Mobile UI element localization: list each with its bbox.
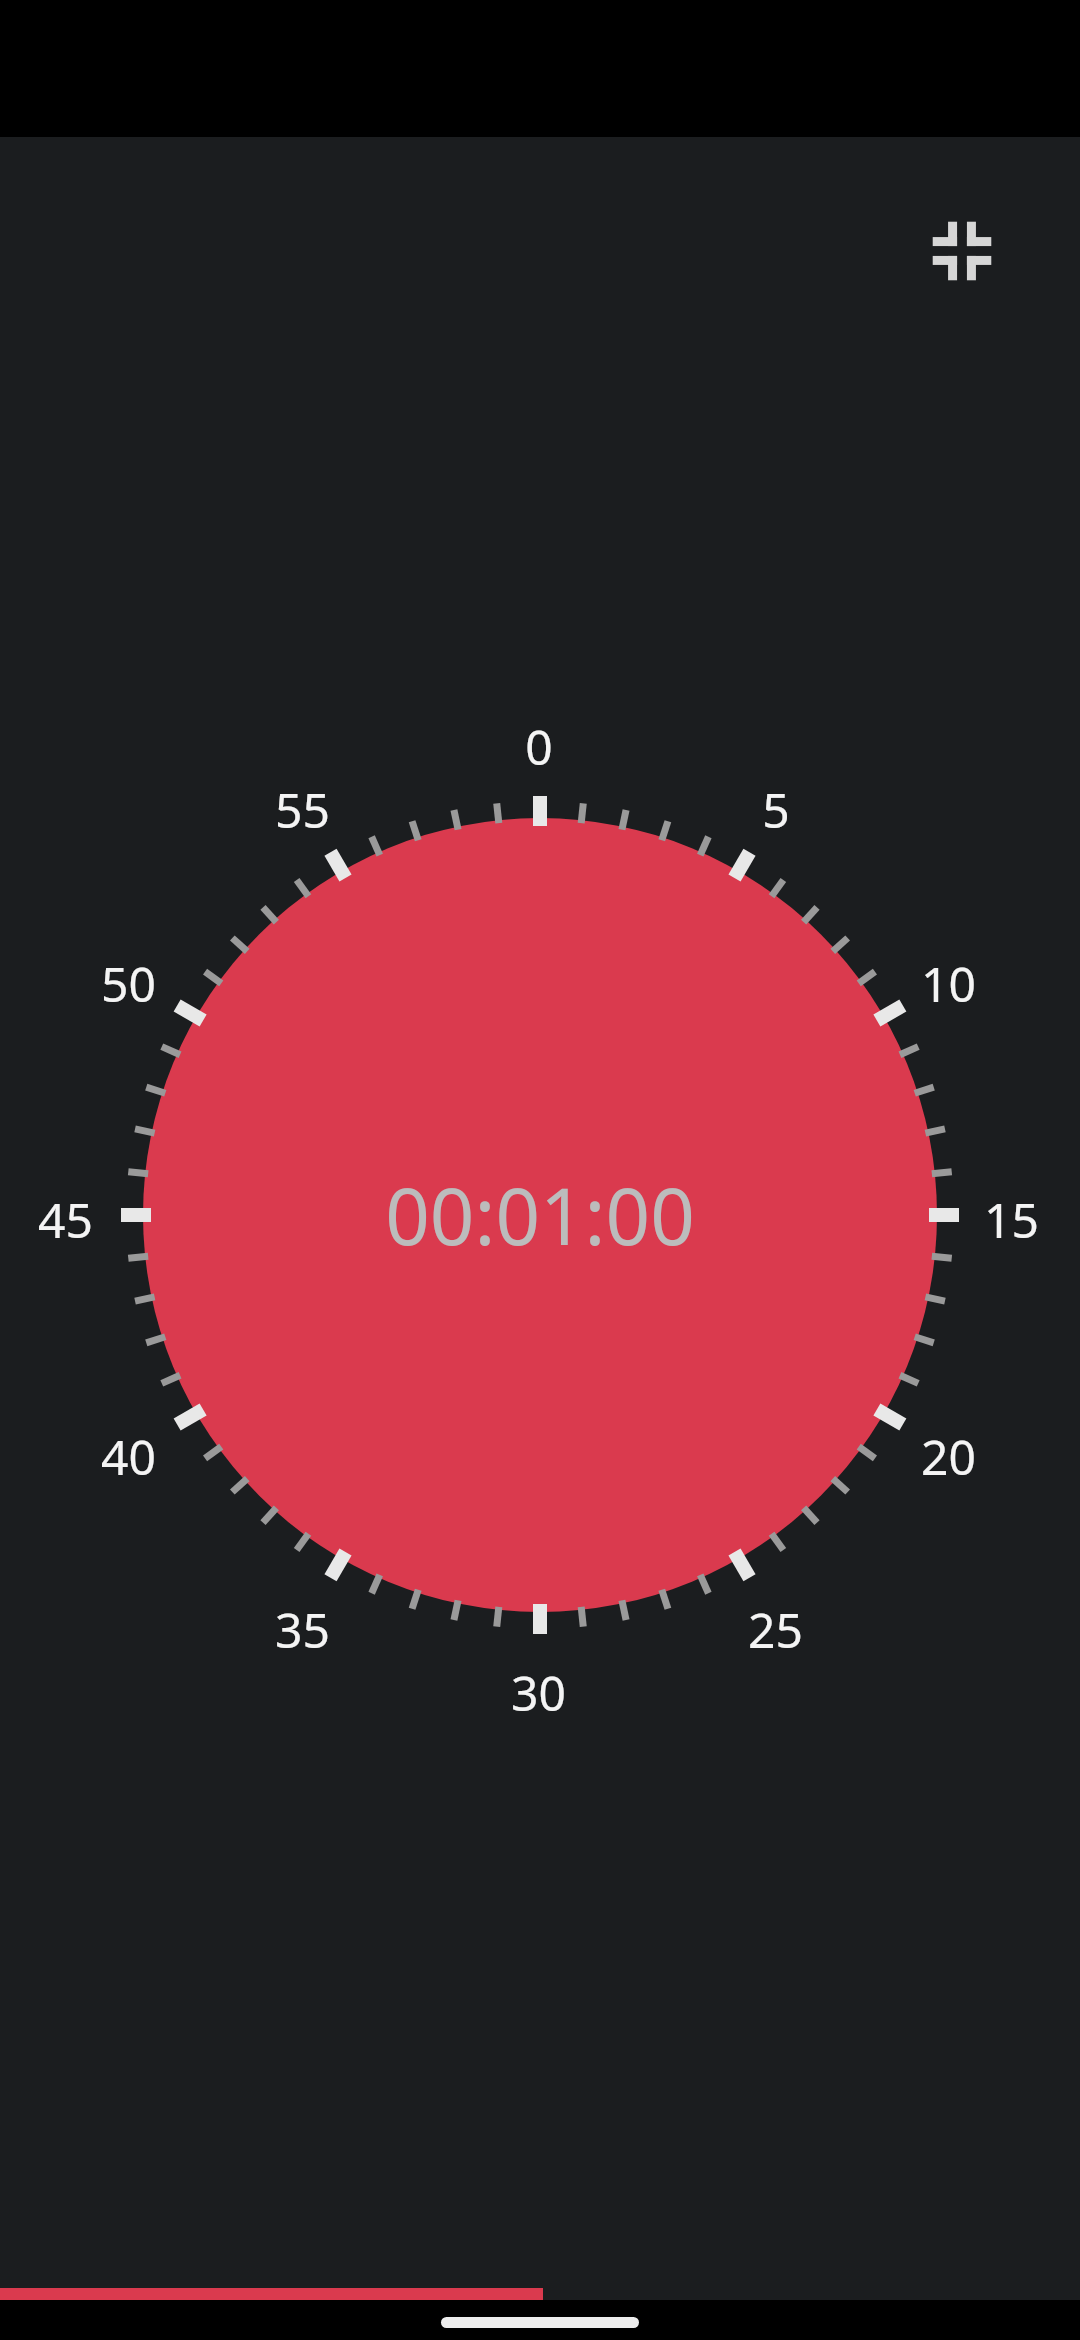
staticText: 45 <box>38 1187 93 1252</box>
staticText: 15 <box>984 1187 1039 1252</box>
staticText: 35 <box>275 1597 330 1662</box>
staticText: 40 <box>101 1424 156 1489</box>
button[interactable]: Exit fullscreen <box>913 202 1011 300</box>
staticText: 30 <box>511 1660 566 1725</box>
staticText: 10 <box>921 951 976 1016</box>
staticText: 25 <box>748 1597 803 1662</box>
staticText: 50 <box>101 951 156 1016</box>
staticText: 0 <box>525 714 553 779</box>
staticText: 5 <box>762 777 790 842</box>
staticText: 00:01:00 <box>385 1162 695 1268</box>
staticText: 55 <box>275 777 330 842</box>
button[interactable]: Timer dial 00:01:00 <box>0 685 1080 1745</box>
staticText: 20 <box>921 1424 976 1489</box>
